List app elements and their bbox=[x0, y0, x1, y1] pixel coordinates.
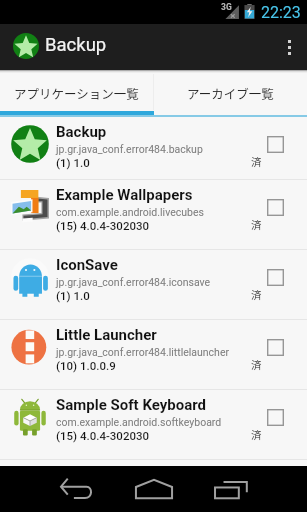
staticText: 3G bbox=[221, 2, 232, 12]
staticText: (10) 1.0.0.9 bbox=[56, 359, 116, 372]
staticText: 済 bbox=[251, 287, 262, 302]
button[interactable]: Back bbox=[52, 466, 100, 512]
staticText: (15) 4.0.4-302030 bbox=[56, 219, 150, 232]
staticText: 済 bbox=[251, 217, 262, 232]
button[interactable]: More options bbox=[271, 24, 307, 70]
button[interactable]: Select app bbox=[267, 269, 284, 286]
staticText: アーカイブ一覧 bbox=[187, 84, 274, 102]
staticText: Backup bbox=[56, 123, 107, 141]
button[interactable]: Home bbox=[130, 466, 178, 512]
button[interactable]: アプリケーション一覧 bbox=[0, 70, 153, 111]
button[interactable]: Backup bbox=[0, 117, 307, 179]
staticText: jp.gr.java_conf.error484.littlelauncher bbox=[56, 346, 230, 358]
button[interactable]: Example Wallpapers bbox=[0, 180, 307, 249]
button[interactable]: Recent apps bbox=[208, 466, 256, 512]
staticText: 22:23 bbox=[261, 3, 301, 22]
staticText: Backup bbox=[45, 34, 107, 56]
staticText: IconSave bbox=[56, 256, 118, 274]
button[interactable]: Select app bbox=[267, 409, 284, 426]
staticText: Sample Soft Keyboard bbox=[56, 396, 207, 414]
staticText: アプリケーション一覧 bbox=[14, 84, 139, 102]
staticText: jp.gr.java_conf.error484.backup bbox=[56, 143, 203, 155]
button[interactable]: Select app bbox=[267, 339, 284, 356]
staticText: (1) 1.0 bbox=[56, 156, 90, 169]
button[interactable]: IconSave bbox=[0, 250, 307, 319]
button[interactable]: アーカイブ一覧 bbox=[154, 70, 307, 111]
button[interactable]: Sample Soft Keyboard bbox=[0, 390, 307, 459]
staticText: 済 bbox=[251, 427, 262, 442]
staticText: (1) 1.0 bbox=[56, 289, 90, 302]
staticText: com.example.android.livecubes bbox=[56, 206, 204, 218]
button[interactable]: Little Launcher bbox=[0, 320, 307, 389]
staticText: Little Launcher bbox=[56, 326, 157, 344]
staticText: jp.gr.java_conf.error484.iconsave bbox=[56, 276, 211, 288]
staticText: Example Wallpapers bbox=[56, 186, 193, 204]
button[interactable]: Select app bbox=[267, 199, 284, 216]
staticText: com.example.android.softkeyboard bbox=[56, 416, 222, 428]
staticText: 済 bbox=[251, 154, 262, 169]
staticText: 済 bbox=[251, 357, 262, 372]
staticText: (15) 4.0.4-302030 bbox=[56, 429, 150, 442]
button[interactable]: Select app bbox=[267, 136, 284, 153]
